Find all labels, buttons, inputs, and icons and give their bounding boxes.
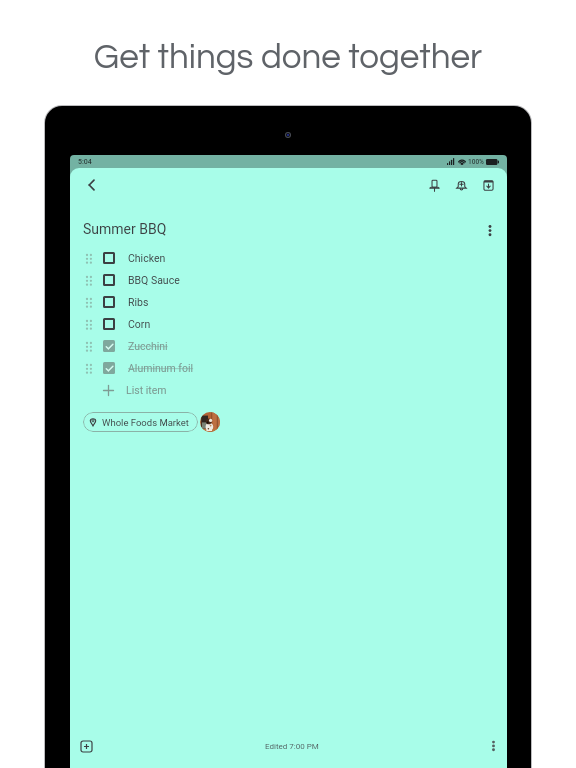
button[interactable]: Reminder xyxy=(451,175,471,195)
button[interactable]: Whole Foods Market xyxy=(83,412,198,432)
button[interactable]: More options xyxy=(480,220,500,240)
button[interactable]: Archive xyxy=(478,175,498,195)
staticText: 5:04 xyxy=(78,158,92,166)
button[interactable]: Add item xyxy=(76,736,96,756)
staticText: Get things done together xyxy=(0,39,576,75)
staticText: Whole Foods Market xyxy=(102,417,189,428)
button[interactable]: Back xyxy=(82,175,102,195)
button[interactable]: Zucchini xyxy=(70,335,507,357)
staticText: Chicken xyxy=(128,252,166,264)
staticText: 100% xyxy=(468,158,484,166)
button[interactable]: Chicken xyxy=(70,247,507,269)
staticText: Ribs xyxy=(128,296,149,308)
button[interactable]: BBQ Sauce xyxy=(70,269,507,291)
staticText: BBQ Sauce xyxy=(128,274,180,286)
staticText: Summer BBQ xyxy=(83,221,167,237)
button[interactable]: Corn xyxy=(70,313,507,335)
staticText: Aluminum foil xyxy=(128,362,194,374)
button[interactable]: List item xyxy=(70,379,507,401)
button[interactable]: Collaborator xyxy=(200,412,220,432)
button[interactable]: Ribs xyxy=(70,291,507,313)
button[interactable]: Pin note xyxy=(424,175,444,195)
button[interactable]: More xyxy=(483,736,503,756)
button[interactable]: Aluminum foil xyxy=(70,357,507,379)
staticText: Zucchini xyxy=(128,340,168,352)
staticText: Edited 7:00 PM xyxy=(265,742,319,751)
staticText: Corn xyxy=(128,318,151,330)
staticText: List item xyxy=(126,384,167,396)
